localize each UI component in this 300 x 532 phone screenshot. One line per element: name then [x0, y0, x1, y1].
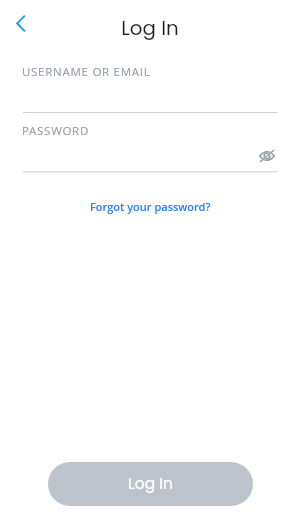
button[interactable]: Show password [253, 142, 281, 170]
staticText: Forgot your password? [90, 199, 211, 214]
button[interactable]: Forgot your password? [84, 196, 217, 217]
staticText: USERNAME OR EMAIL [22, 64, 151, 80]
button[interactable]: Back [3, 6, 38, 41]
staticText: PASSWORD [22, 123, 89, 139]
button[interactable]: Log In [48, 462, 253, 506]
staticText: Log In [0, 14, 300, 42]
staticText: Log In [128, 473, 173, 495]
